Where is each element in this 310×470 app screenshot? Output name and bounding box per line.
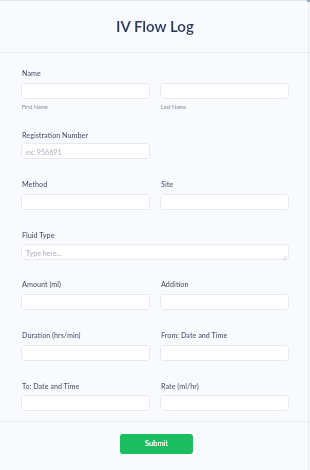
staticText: Name [22, 69, 41, 78]
staticText: Fluid Type [22, 231, 55, 240]
staticText: Rate (ml/hr) [161, 382, 199, 391]
button[interactable]: Duration [21, 345, 150, 361]
button[interactable]: Submit [120, 434, 193, 454]
staticText: IV Flow Log [116, 17, 194, 35]
staticText: Last Name [161, 104, 187, 110]
button[interactable]: Rate in ml per hour [160, 395, 289, 411]
staticText: Submit [145, 439, 169, 448]
button[interactable]: Site [160, 194, 289, 210]
button[interactable]: From date and time [160, 345, 289, 361]
staticText: First Name [22, 104, 48, 110]
staticText: Method [22, 180, 48, 189]
button[interactable]: To date and time [21, 395, 150, 411]
staticText: From: Date and Time [161, 331, 228, 340]
button[interactable]: Method [21, 194, 150, 210]
button[interactable]: Fluid type [21, 244, 289, 260]
staticText: Amount (ml) [22, 280, 61, 289]
button[interactable]: Addition [160, 294, 289, 310]
button[interactable]: Last name [160, 83, 289, 99]
staticText: Registration Number [22, 131, 89, 140]
button[interactable]: First name [21, 83, 150, 99]
staticText: To: Date and Time [22, 382, 80, 391]
staticText: Type here... [26, 249, 62, 258]
staticText: Addition [161, 280, 189, 289]
button[interactable]: Registration number [21, 143, 150, 159]
staticText: Site [161, 180, 174, 189]
button[interactable]: Amount in ml [21, 294, 150, 310]
staticText: Duration (hrs/min) [22, 331, 81, 340]
staticText: ex: 956691 [26, 148, 62, 157]
